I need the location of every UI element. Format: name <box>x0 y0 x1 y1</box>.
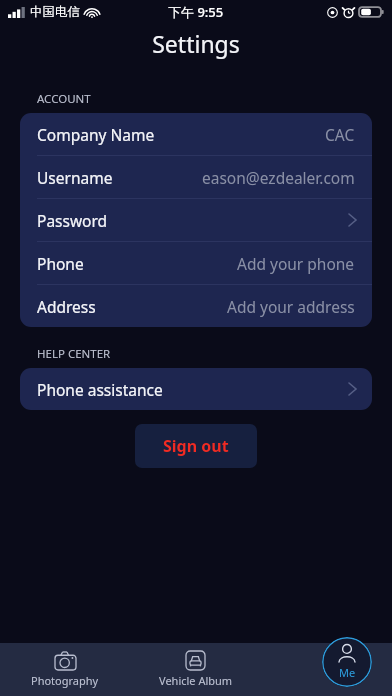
button[interactable]: Password <box>20 199 372 242</box>
staticText: Vehicle Album <box>159 673 233 688</box>
button[interactable]: Phone assistance <box>20 368 372 410</box>
staticText: eason@ezdealer.com <box>202 167 355 188</box>
button[interactable]: Sign out <box>135 424 257 468</box>
staticText: Add your address <box>227 296 355 317</box>
button[interactable]: Me <box>322 637 372 687</box>
staticText: Photography <box>31 673 99 688</box>
staticText: HELP CENTER <box>37 346 111 362</box>
staticText: Username <box>37 167 113 188</box>
staticText: Company Name <box>37 124 155 145</box>
staticText: Phone <box>37 253 84 274</box>
staticText: Sign out <box>163 435 229 457</box>
button[interactable]: Photography <box>0 643 130 696</box>
button[interactable]: Address <box>20 285 372 327</box>
staticText: CAC <box>325 124 355 145</box>
button[interactable]: Phone <box>20 242 372 285</box>
staticText: Phone assistance <box>37 379 163 400</box>
staticText: 中国电信 <box>30 4 80 20</box>
button[interactable]: Company Name <box>20 113 372 156</box>
staticText: ACCOUNT <box>37 91 91 107</box>
staticText: Add your phone <box>237 253 355 274</box>
staticText: Me <box>339 665 356 680</box>
staticText: Address <box>37 296 96 317</box>
staticText: Password <box>37 210 108 231</box>
staticText: 下午 9:55 <box>168 3 224 21</box>
button[interactable]: Vehicle Album <box>130 643 261 696</box>
button[interactable]: Username <box>20 156 372 199</box>
staticText: Settings <box>152 28 240 59</box>
